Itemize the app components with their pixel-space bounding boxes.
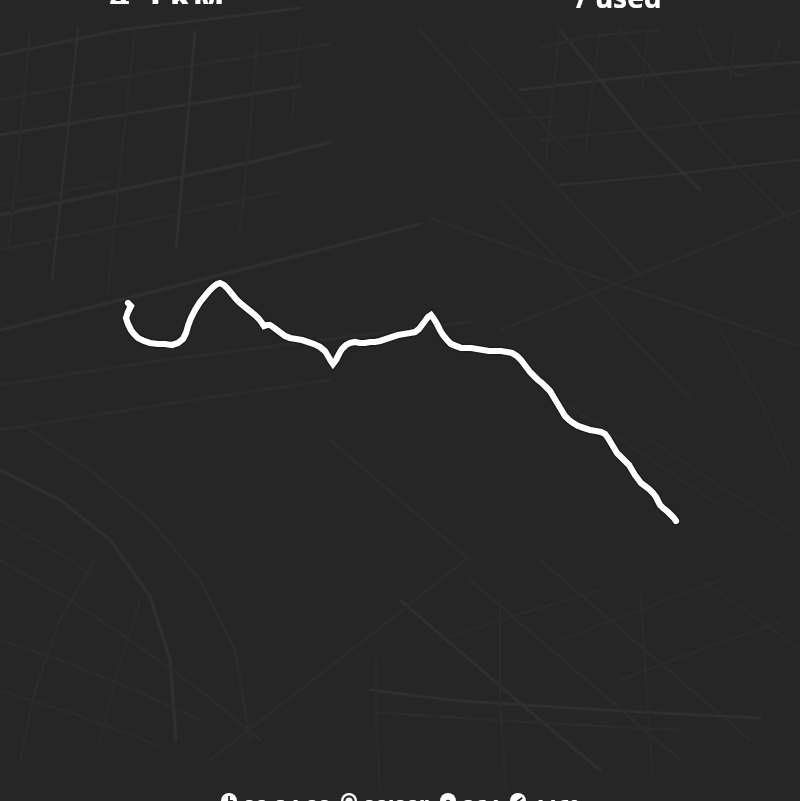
staticText: 00:24:00 [243,791,331,801]
button[interactable]: Calories [440,779,500,801]
button[interactable]: Pace [341,779,430,801]
staticText: 264 [462,791,500,801]
staticText: 4,5 KM [110,0,226,4]
button[interactable]: Elevation [510,779,580,801]
staticText: / used [576,0,662,8]
button[interactable]: Workout route map [0,0,800,801]
button[interactable]: Duration [221,779,331,801]
staticText: 00'00" [363,791,430,801]
staticText: 446° [532,791,580,801]
